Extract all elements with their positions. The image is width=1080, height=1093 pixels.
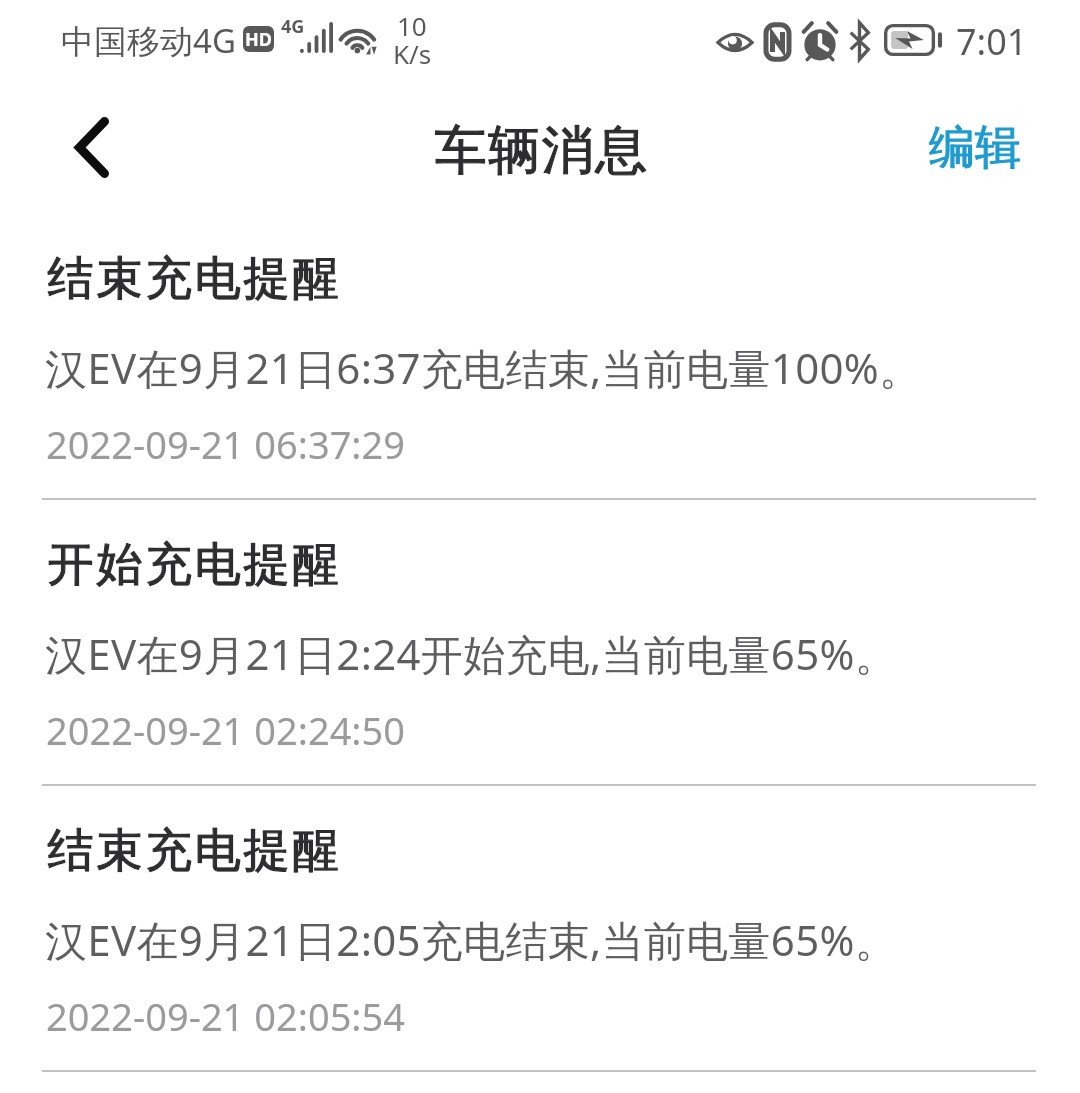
button[interactable]: Back (32, 87, 152, 207)
button[interactable]: 结束充电提醒 (0, 786, 1080, 1072)
staticText: 10 (397, 8, 427, 43)
staticText: 车辆消息 (434, 118, 648, 184)
staticText: 汉EV在9月21日2:24开始充电,当前电量65%。 (45, 625, 897, 682)
staticText: K/s (393, 36, 432, 71)
staticText: 车辆消息 (434, 118, 648, 184)
staticText: 2022-09-21 02:05:54 (46, 990, 406, 1042)
staticText: 开始充电提醒 (46, 536, 340, 594)
staticText: 编辑 (929, 119, 1021, 177)
staticText: 编辑 (929, 119, 1021, 177)
staticText: 汉EV在9月21日6:37充电结束,当前电量100%。 (45, 339, 922, 396)
staticText: 2022-09-21 02:24:50 (46, 704, 406, 756)
staticText: 4G (281, 14, 305, 39)
staticText: 2022-09-21 06:37:29 (46, 418, 406, 470)
staticText: 结束充电提醒 (46, 250, 340, 308)
staticText: 结束充电提醒 (46, 822, 340, 880)
staticText: 中国移动4G (61, 18, 236, 63)
button[interactable]: 开始充电提醒 (0, 500, 1080, 786)
button[interactable]: 编辑 (900, 92, 1050, 204)
staticText: 7:01 (956, 17, 1028, 66)
staticText: 开始充电提醒 (46, 536, 340, 594)
staticText: 汉EV在9月21日2:05充电结束,当前电量65%。 (45, 911, 897, 968)
button[interactable]: 结束充电提醒 (0, 214, 1080, 500)
staticText: 结束充电提醒 (46, 822, 340, 880)
staticText: HD (245, 27, 272, 52)
staticText: 结束充电提醒 (46, 250, 340, 308)
